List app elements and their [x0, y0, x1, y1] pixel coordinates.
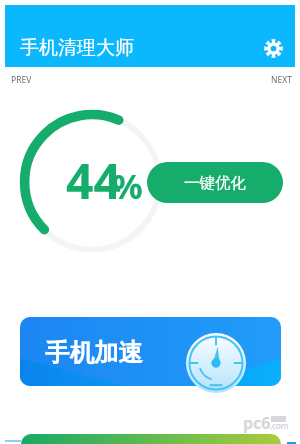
button[interactable]: 手机加速: [20, 317, 281, 386]
staticText: PREV: [11, 74, 32, 86]
staticText: .com: [270, 420, 289, 431]
button[interactable]: NEXT: [271, 74, 292, 86]
staticText: 一键优化: [184, 173, 246, 193]
button[interactable]: Settings: [259, 34, 288, 63]
staticText: 手机加速: [45, 337, 143, 368]
button[interactable]: [21, 434, 281, 444]
button[interactable]: 一键优化: [147, 162, 283, 203]
staticText: 44: [66, 148, 121, 213]
button[interactable]: PREV: [11, 74, 32, 86]
staticText: pc6: [243, 412, 271, 434]
staticText: NEXT: [271, 74, 292, 86]
staticText: 手机清理大师: [20, 36, 134, 60]
staticText: %: [112, 163, 143, 209]
